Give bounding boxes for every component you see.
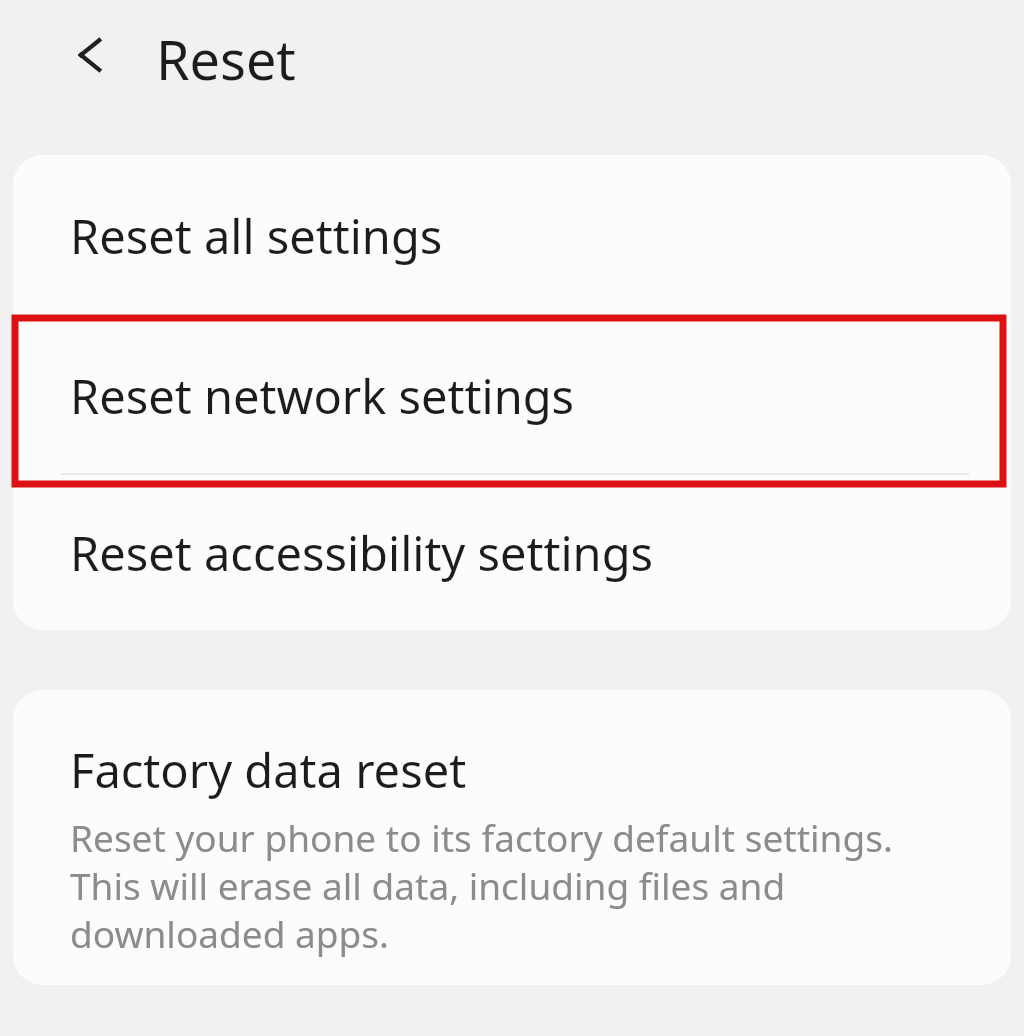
staticText: Reset: [156, 22, 296, 96]
staticText: Factory data reset: [70, 738, 467, 802]
staticText: Reset accessibility settings: [70, 521, 654, 585]
staticText: Reset all settings: [70, 204, 443, 268]
button[interactable]: Back: [50, 15, 130, 95]
button[interactable]: Reset accessibility settings: [13, 475, 1011, 630]
button[interactable]: Reset all settings: [13, 155, 1011, 317]
button[interactable]: Factory data reset: [13, 690, 1011, 985]
button[interactable]: Reset network settings: [13, 317, 1011, 475]
staticText: Reset your phone to its factory default …: [70, 812, 956, 959]
staticText: Reset network settings: [70, 364, 575, 428]
